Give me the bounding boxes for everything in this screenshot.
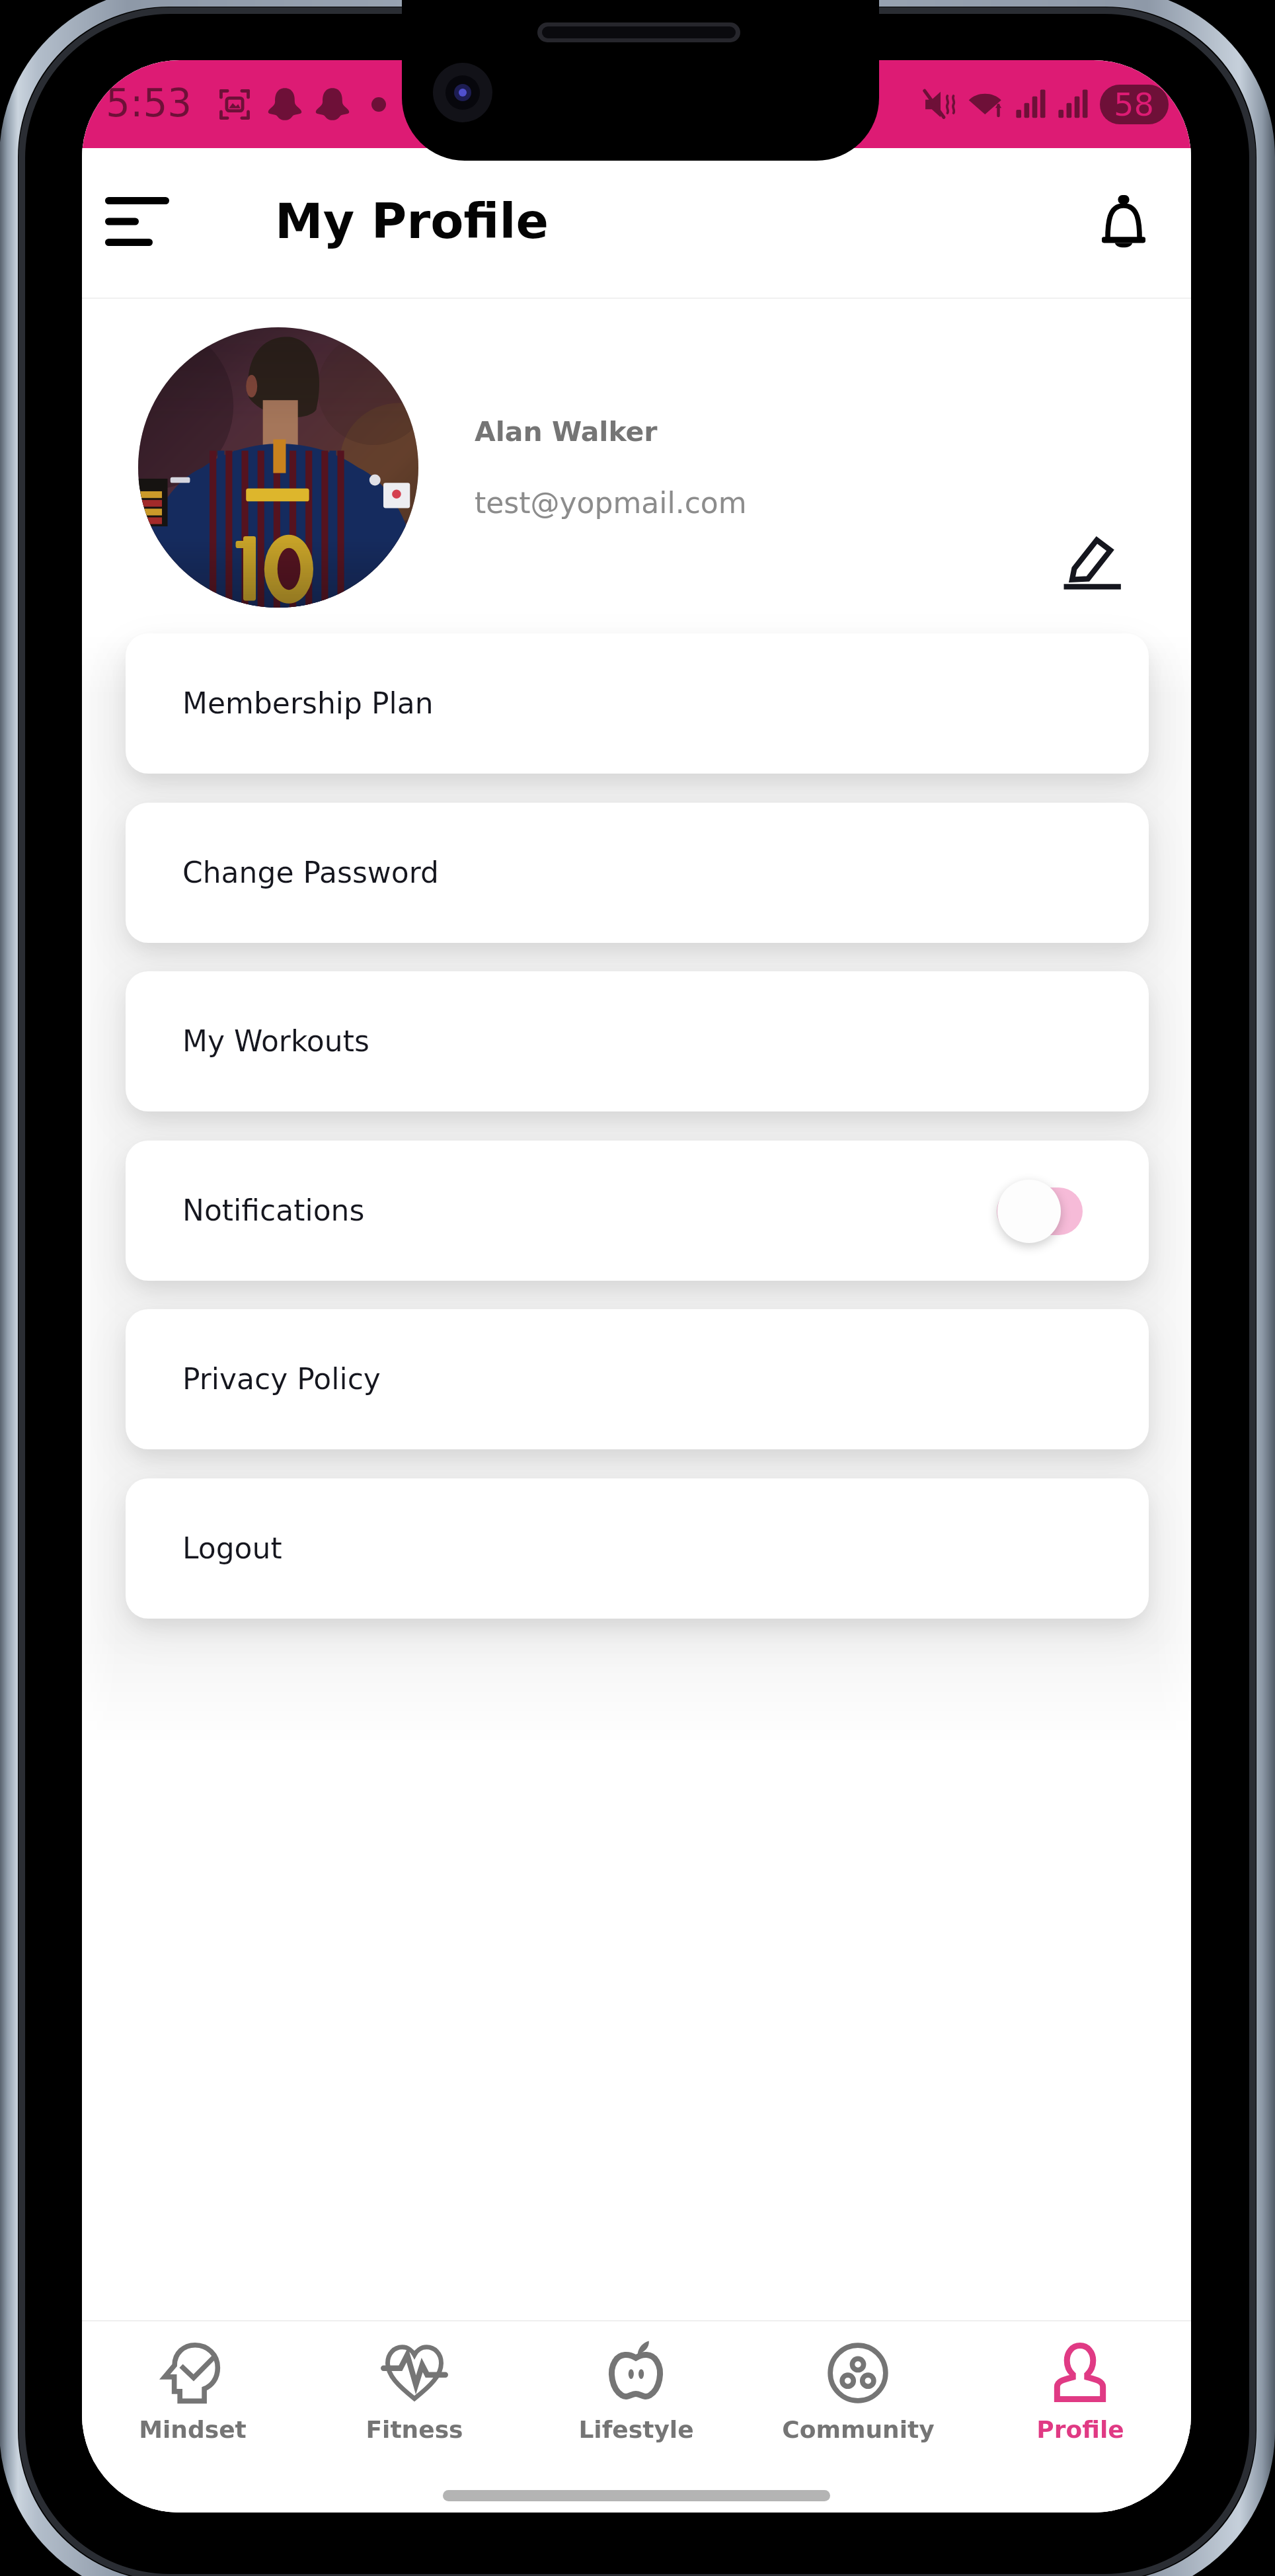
staticText: Mindset xyxy=(139,2416,247,2444)
button[interactable]: Notifications xyxy=(1083,181,1165,262)
staticText: 5:53 xyxy=(106,81,192,126)
button[interactable]: Profile xyxy=(969,2321,1191,2444)
staticText: Membership Plan xyxy=(182,686,434,720)
staticText: Privacy Policy xyxy=(182,1362,381,1396)
button[interactable]: My Workouts xyxy=(126,971,1149,1111)
button[interactable]: Community xyxy=(747,2321,969,2444)
button[interactable]: Lifestyle xyxy=(525,2321,747,2444)
button[interactable]: Fitness xyxy=(303,2321,525,2444)
button[interactable]: Edit profile xyxy=(1052,522,1131,602)
button[interactable]: Notifications xyxy=(126,1141,1149,1281)
staticText: Alan Walker xyxy=(475,416,658,448)
button[interactable]: Logout xyxy=(126,1478,1149,1619)
staticText: test@yopmail.com xyxy=(475,486,747,520)
button[interactable]: Change Password xyxy=(126,803,1149,943)
staticText: Profile xyxy=(1036,2416,1124,2444)
staticText: My Profile xyxy=(275,193,549,249)
staticText: Logout xyxy=(182,1531,282,1565)
staticText: Fitness xyxy=(366,2416,463,2444)
staticText: Lifestyle xyxy=(578,2416,694,2444)
staticText: My Workouts xyxy=(182,1024,369,1058)
button[interactable]: Membership Plan xyxy=(126,633,1149,774)
staticText: Change Password xyxy=(182,856,439,889)
staticText: 58 xyxy=(1114,86,1155,123)
button[interactable]: Privacy Policy xyxy=(126,1309,1149,1449)
button[interactable]: Menu xyxy=(94,179,180,264)
staticText: Community xyxy=(782,2416,935,2444)
staticText: Notifications xyxy=(182,1193,365,1227)
button[interactable]: Mindset xyxy=(82,2321,303,2444)
